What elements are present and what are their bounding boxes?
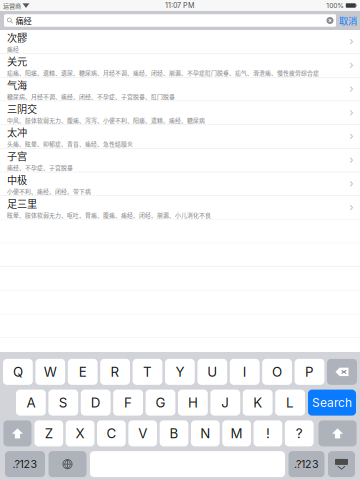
staticText: 11:07 PM (165, 1, 195, 10)
button[interactable]: H (178, 390, 208, 416)
staticText: 太冲 (7, 125, 27, 140)
staticText: W (44, 364, 57, 380)
button[interactable]: G (146, 390, 175, 416)
staticText: J (221, 394, 229, 411)
button[interactable]: 三阴交 (0, 101, 360, 125)
staticText: 痛经 (7, 45, 19, 53)
staticText: 100% (326, 1, 344, 10)
button[interactable]: Shift (3, 420, 31, 446)
staticText: S (59, 394, 68, 411)
staticText: L (286, 394, 294, 411)
staticText: 次髎 (7, 30, 27, 45)
staticText: 关元 (7, 54, 27, 68)
button[interactable]: Delete (327, 359, 357, 385)
button[interactable]: Hide keyboard (328, 451, 355, 477)
staticText: C (106, 425, 116, 441)
button[interactable]: F (113, 390, 143, 416)
staticText: G (155, 394, 165, 411)
button[interactable]: 关元 (0, 54, 360, 77)
staticText: 疝痛、阳痿、遗精、遗尿、糖尿病、月经不调、痛经、闭经、崩漏、不孕症肛门脱垂、疝气… (7, 68, 319, 77)
button[interactable]: P (295, 359, 324, 385)
staticText: A (26, 394, 35, 411)
button[interactable]: 次髎 (0, 30, 360, 54)
button[interactable]: L (275, 390, 305, 416)
staticText: K (253, 394, 262, 411)
button[interactable]: 足三里 (0, 196, 360, 220)
button[interactable]: 子宫 (0, 148, 360, 172)
staticText: X (76, 425, 85, 441)
button[interactable]: B (160, 420, 188, 446)
staticText: ? (296, 425, 303, 441)
staticText: P (305, 364, 314, 380)
button[interactable]: 气海 (0, 77, 360, 101)
button[interactable]: .?123 (5, 451, 45, 477)
staticText: 三阴交 (7, 101, 37, 116)
staticText: I (243, 364, 247, 380)
staticText: 足三里 (7, 196, 37, 211)
staticText: D (91, 394, 101, 411)
staticText: 糖尿病、月经不调、痛经、闭经、不孕症、子宫脱垂、肛门脱垂 (7, 92, 175, 101)
staticText: T (143, 364, 152, 380)
button[interactable]: ! (254, 420, 282, 446)
staticText: 运营商 (3, 1, 21, 10)
button[interactable]: U (197, 359, 227, 385)
staticText: U (207, 364, 217, 380)
button[interactable]: ? (285, 420, 314, 446)
button[interactable]: Q (3, 359, 33, 385)
button[interactable]: M (222, 420, 251, 446)
button[interactable]: Search (308, 390, 356, 416)
button[interactable]: Y (165, 359, 195, 385)
button[interactable]: W (35, 359, 65, 385)
button[interactable]: I (230, 359, 260, 385)
staticText: E (79, 364, 87, 380)
staticText: .?123 (294, 458, 319, 471)
staticText: V (138, 425, 147, 441)
staticText: Q (13, 364, 23, 380)
button[interactable]: S (48, 390, 78, 416)
button[interactable]: T (133, 359, 162, 385)
staticText: 头痛、眩晕、抑郁症、青盲、痛经、急性结膜炎 (7, 139, 133, 148)
staticText: M (231, 425, 243, 441)
button[interactable]: Next keyboard (48, 451, 86, 477)
staticText: 子宫 (7, 149, 27, 163)
button[interactable]: R (100, 359, 130, 385)
staticText: 小便不利、痛经、闭经、带下病 (7, 187, 91, 195)
staticText: Z (45, 425, 53, 441)
staticText: 取消 (339, 14, 357, 27)
button[interactable]: D (81, 390, 111, 416)
button[interactable]: N (191, 420, 220, 446)
staticText: 痛经、不孕症、子宫脱垂 (7, 163, 73, 172)
staticText: 痛经 (15, 14, 31, 26)
staticText: F (124, 394, 132, 411)
button[interactable]: 取消 (339, 11, 357, 30)
button[interactable]: J (210, 390, 240, 416)
button[interactable]: C (97, 420, 126, 446)
button[interactable]: V (128, 420, 157, 446)
staticText: 中风、肢体软弱无力、腹痛、泻泻、小便不利、阳痿、遗精、痛经、糖尿病 (7, 116, 205, 124)
staticText: .?123 (12, 458, 37, 471)
staticText: 中极 (7, 172, 27, 187)
button[interactable]: O (262, 359, 292, 385)
button[interactable]: .?123 (288, 451, 324, 477)
button[interactable]: X (66, 420, 94, 446)
button[interactable]: E (68, 359, 98, 385)
button[interactable]: K (243, 390, 273, 416)
staticText: B (169, 425, 178, 441)
staticText: O (272, 364, 282, 380)
button[interactable]: A (16, 390, 46, 416)
staticText: Search (312, 395, 352, 410)
staticText: 气海 (7, 77, 27, 92)
button[interactable]: Z (34, 420, 63, 446)
staticText: Y (175, 364, 184, 380)
staticText: ! (266, 425, 270, 441)
staticText: N (200, 425, 210, 441)
button[interactable]: 太冲 (0, 125, 360, 148)
staticText: 眩晕、肢体软弱无力、呕吐、胃痛、腹痛、痛经、闭经、崩漏、小儿消化不良 (7, 211, 211, 219)
staticText: R (111, 364, 120, 380)
button[interactable]: Shift (318, 420, 356, 446)
staticText: H (188, 394, 198, 411)
button[interactable]: 中极 (0, 172, 360, 196)
